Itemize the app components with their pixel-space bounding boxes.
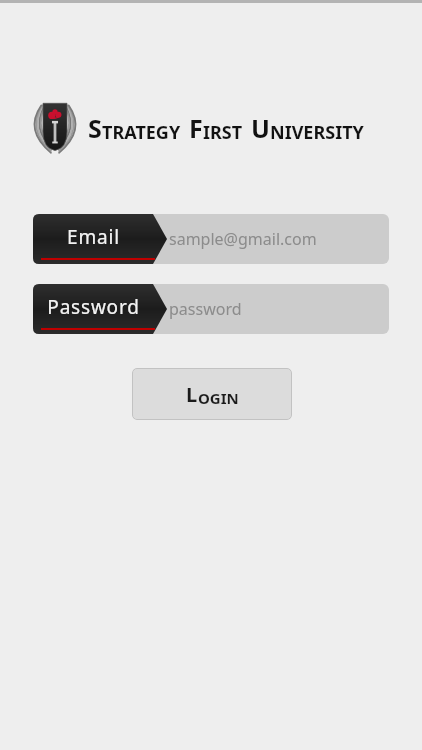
staticText: sample@gmail.com [169,228,317,250]
staticText: U [251,111,270,145]
staticText: IRST [203,120,243,145]
staticText: F [189,111,203,145]
staticText: password [169,298,242,320]
staticText: TRATEGY [102,120,181,145]
button[interactable]: L [132,368,292,420]
staticText: Password [47,294,140,320]
button[interactable]: sample@gmail.com [33,214,389,264]
staticText: OGIN [198,388,239,408]
staticText: L [186,381,198,408]
staticText: S [88,111,102,145]
button[interactable]: password [33,284,389,334]
staticText: NIVERSITY [270,120,364,145]
staticText: Email [67,224,120,250]
